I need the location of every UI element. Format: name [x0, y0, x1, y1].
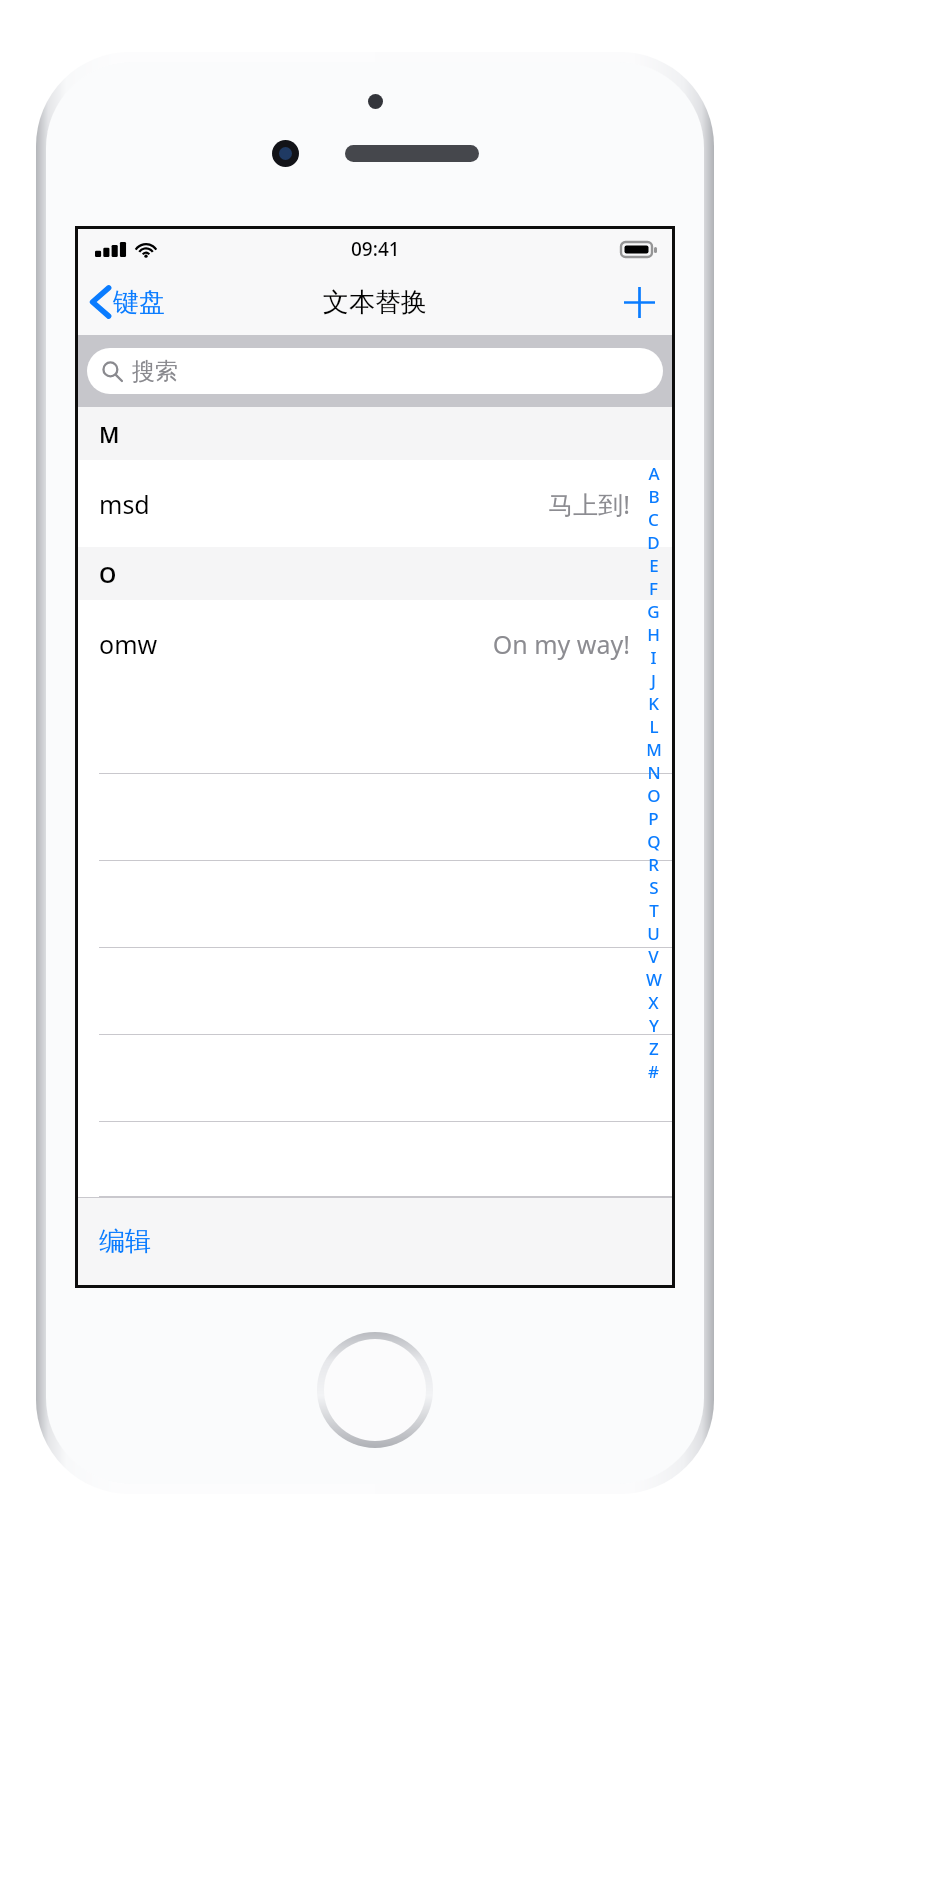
staticText: 马上到!	[548, 487, 630, 521]
staticText: 键盘	[113, 286, 165, 319]
staticText: U	[647, 922, 660, 945]
staticText: K	[648, 692, 659, 715]
button[interactable]: omw	[78, 600, 672, 687]
staticText: X	[648, 991, 659, 1014]
staticText: omw	[99, 627, 158, 661]
staticText: A	[648, 462, 660, 485]
staticText: D	[647, 531, 660, 554]
staticText: B	[648, 485, 660, 508]
staticText: C	[648, 508, 659, 531]
staticText: Q	[647, 830, 661, 853]
staticText: G	[647, 600, 660, 623]
staticText: M	[646, 738, 662, 761]
staticText: L	[649, 715, 659, 738]
staticText: Z	[649, 1037, 659, 1060]
staticText: E	[649, 554, 659, 577]
staticText: W	[646, 968, 662, 991]
staticText: P	[648, 807, 659, 830]
staticText: 编辑	[99, 1225, 151, 1258]
button[interactable]: Add	[606, 269, 672, 335]
staticText: H	[647, 623, 660, 646]
staticText: M	[99, 419, 120, 449]
staticText: 搜索	[132, 357, 178, 386]
staticText: On my way!	[492, 627, 630, 661]
staticText: 文本替换	[323, 286, 427, 319]
staticText: O	[647, 784, 661, 807]
button[interactable]: msd	[78, 460, 672, 547]
staticText: I	[650, 646, 657, 669]
button[interactable]: Section index	[640, 462, 667, 1083]
button[interactable]: 键盘	[78, 269, 179, 335]
staticText: 09:41	[351, 236, 400, 262]
staticText: N	[647, 761, 661, 784]
staticText: #	[648, 1060, 659, 1083]
staticText: msd	[99, 487, 150, 521]
staticText: V	[648, 945, 659, 968]
button[interactable]: 编辑	[78, 1197, 172, 1285]
staticText: J	[651, 669, 656, 692]
staticText: R	[648, 853, 659, 876]
staticText: T	[649, 899, 659, 922]
staticText: O	[99, 559, 117, 589]
staticText: F	[649, 577, 658, 600]
staticText: S	[649, 876, 659, 899]
staticText: Y	[649, 1014, 659, 1037]
button[interactable]: 搜索	[87, 348, 663, 394]
